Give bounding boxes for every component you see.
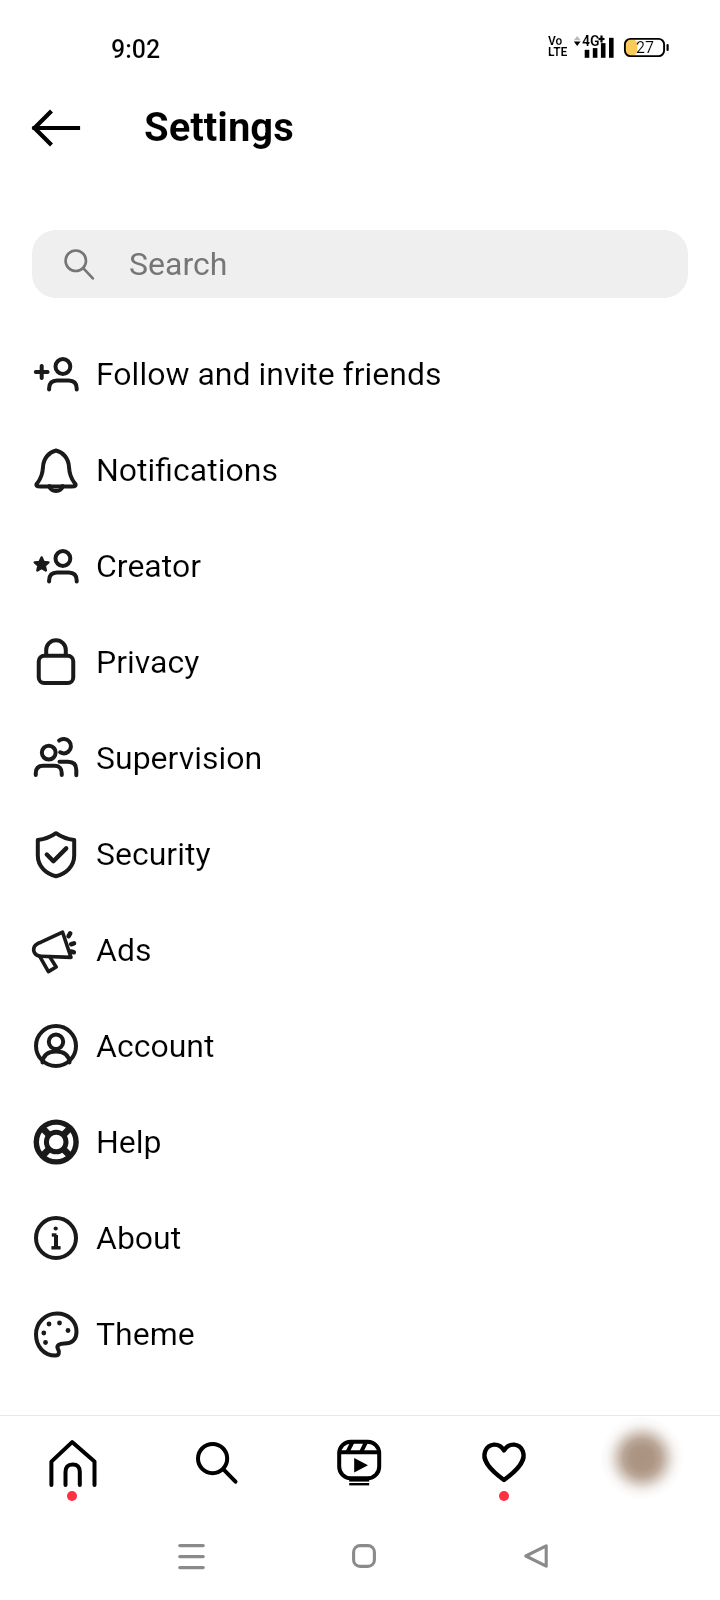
button[interactable]: Home: [0, 1416, 144, 1505]
button[interactable]: Reels: [288, 1416, 432, 1505]
button[interactable]: Theme: [0, 1286, 720, 1382]
staticText: Creator: [96, 547, 201, 585]
button[interactable]: Profile: [576, 1416, 720, 1505]
button[interactable]: Recents: [158, 1523, 224, 1589]
staticText: 4G: [582, 33, 600, 49]
button[interactable]: Activity: [432, 1416, 576, 1505]
button[interactable]: Help: [0, 1094, 720, 1190]
staticText: Theme: [96, 1315, 195, 1353]
staticText: Notifications: [96, 451, 278, 489]
staticText: Security: [96, 835, 211, 873]
staticText: Vo: [548, 34, 563, 48]
staticText: Follow and invite friends: [96, 355, 442, 393]
staticText: Supervision: [96, 739, 263, 777]
staticText: Settings: [144, 104, 294, 151]
button[interactable]: Creator: [0, 518, 720, 614]
staticText: 27: [636, 38, 654, 57]
button[interactable]: Home: [331, 1523, 397, 1589]
button[interactable]: Search: [32, 230, 688, 298]
button[interactable]: Privacy: [0, 614, 720, 710]
button[interactable]: Ads: [0, 902, 720, 998]
staticText: Help: [96, 1123, 162, 1161]
button[interactable]: Back: [503, 1523, 569, 1589]
button[interactable]: Follow and invite friends: [0, 326, 720, 422]
button[interactable]: Notifications: [0, 422, 720, 518]
staticText: Ads: [96, 931, 152, 969]
staticText: Search: [129, 245, 228, 283]
button[interactable]: Back: [22, 94, 90, 162]
button[interactable]: Supervision: [0, 710, 720, 806]
staticText: LTE: [548, 45, 568, 59]
staticText: About: [96, 1219, 182, 1257]
staticText: Privacy: [96, 643, 200, 681]
button[interactable]: Security: [0, 806, 720, 902]
button[interactable]: Account: [0, 998, 720, 1094]
staticText: 9:02: [111, 35, 161, 64]
button[interactable]: About: [0, 1190, 720, 1286]
button[interactable]: Search: [144, 1416, 288, 1505]
staticText: Account: [96, 1027, 215, 1065]
